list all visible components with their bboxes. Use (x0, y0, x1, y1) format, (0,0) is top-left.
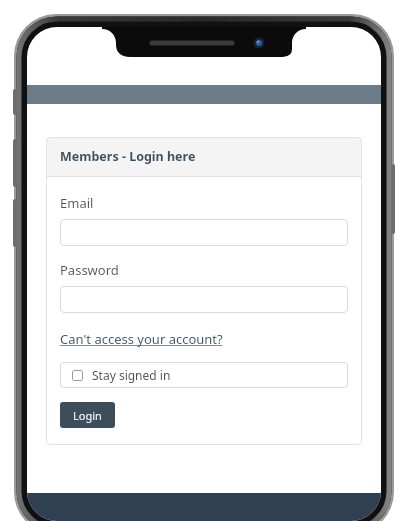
staticText: Members - Login here (60, 148, 196, 165)
button[interactable] (60, 286, 348, 313)
staticText: Can't access your account? (60, 330, 223, 348)
staticText: Password (60, 261, 119, 279)
staticText: Email (60, 194, 94, 212)
staticText: Stay signed in (92, 367, 171, 383)
button[interactable]: Stay signed in (60, 362, 348, 388)
button[interactable]: Login (60, 402, 115, 428)
staticText: Login (73, 408, 102, 423)
button[interactable] (60, 219, 348, 246)
button[interactable]: Can't access your account? (60, 330, 223, 348)
